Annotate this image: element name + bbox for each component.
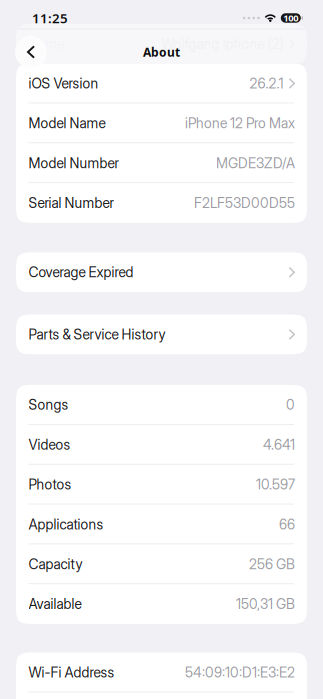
button[interactable]: Capacity [16,544,307,584]
button[interactable]: Parts & Service History [16,315,307,354]
staticText: 4.641 [263,436,295,453]
staticText: 10.597 [256,476,295,493]
button[interactable]: Videos [16,425,307,465]
staticText: F2LF53D00D55 [194,195,295,211]
staticText: Coverage Expired [28,264,133,281]
staticText: 150,31 GB [236,596,295,612]
button[interactable]: Coverage Expired [16,252,307,292]
button[interactable]: Model Name [16,103,307,143]
staticText: MGDE3ZD/A [216,155,295,171]
staticText: Capacity [28,556,82,573]
staticText: 54:09:10:D1:E3:E2 [185,664,295,681]
button[interactable]: Applications [16,504,307,544]
staticText: Name [28,35,64,52]
staticText: Songs [28,396,68,413]
staticText: 11:25 [32,9,68,27]
staticText: About [143,44,180,60]
staticText: iPhone 12 Pro Max [185,115,295,132]
staticText: Model Number [28,155,118,171]
button[interactable]: Wi-Fi Address [16,652,307,692]
button[interactable]: Songs [16,385,307,425]
staticText: Photos [28,476,71,493]
staticText: 256 GB [249,556,295,573]
staticText: 100 [283,12,298,24]
staticText: Parts & Service History [28,326,165,343]
staticText: Serial Number [28,195,113,211]
staticText: Videos [28,436,70,453]
button[interactable]: Model Number [16,143,307,183]
staticText: Model Name [28,115,105,132]
staticText: Available [28,596,81,612]
staticText: iOS Version [28,75,98,92]
staticText: 0 [286,396,295,413]
button[interactable]: Back [14,35,48,69]
button[interactable]: Serial Number [16,183,307,223]
button[interactable]: Available [16,584,307,624]
staticText: Applications [28,516,103,533]
staticText: Wolfgang Iphone (2) [162,35,284,52]
button[interactable]: Photos [16,465,307,504]
staticText: Wi-Fi Address [28,664,114,681]
button[interactable]: iOS Version [16,63,307,103]
staticText: 26.2.1 [250,75,284,92]
staticText: 66 [279,516,295,533]
